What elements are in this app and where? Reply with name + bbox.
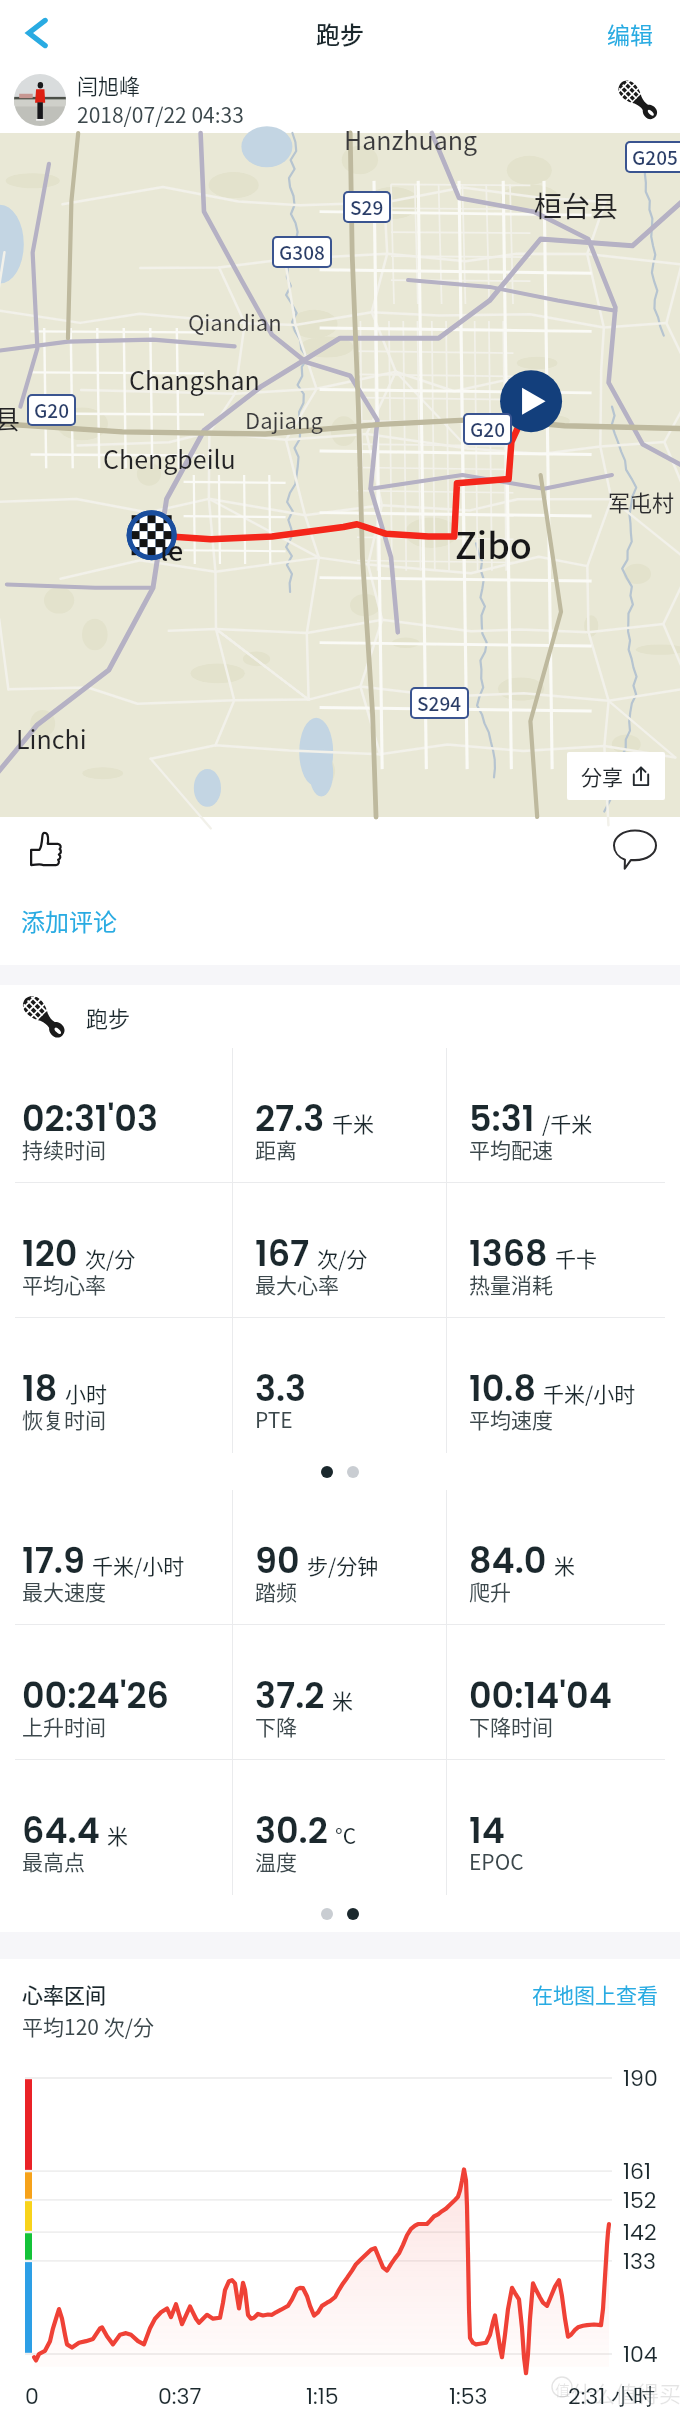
staticText: le (160, 530, 184, 569)
staticText: G20 (470, 415, 505, 443)
staticText: Linchi (16, 720, 87, 756)
staticText: 90 (255, 1536, 300, 1585)
staticText: 千米/小时 (92, 1550, 185, 1580)
staticText: 84.0 (469, 1536, 547, 1585)
staticText: 18 (22, 1364, 58, 1413)
staticText: S29 (350, 193, 384, 221)
staticText: 军屯村 (608, 485, 675, 517)
staticText: 编辑 (607, 17, 653, 50)
staticText: Zibo (455, 517, 533, 569)
staticText: 值 (555, 2379, 571, 2401)
staticText: 次/分 (85, 1243, 136, 1273)
staticText: 152 (623, 2185, 657, 2216)
staticText: PTE (255, 1404, 293, 1434)
staticText: 2018/07/22 04:33 (77, 99, 244, 129)
button[interactable]: Comment (610, 824, 660, 874)
staticText: /千米 (542, 1108, 593, 1138)
staticText: 02:31'03 (22, 1094, 158, 1143)
staticText: 闫旭峰 (77, 70, 140, 100)
staticText: 64.4 (22, 1806, 100, 1855)
staticText: 千米/小时 (543, 1378, 636, 1408)
staticText: S294 (417, 689, 462, 717)
staticText: 133 (623, 2246, 656, 2277)
staticText: 添加评论 (21, 903, 117, 938)
staticText: 桓台县 (534, 185, 619, 226)
staticText: 分享 (581, 761, 623, 791)
staticText: 120 (22, 1229, 78, 1278)
staticText: 平均心率 (22, 1269, 106, 1299)
staticText: Dajiang (245, 403, 323, 435)
staticText: Chengbeilu (103, 440, 236, 476)
staticText: EPOC (469, 1846, 524, 1876)
staticText: Changshan (129, 361, 260, 397)
staticText: 心率区间 (22, 1979, 106, 2009)
button[interactable]: Back (0, 0, 74, 66)
staticText: 10.8 (469, 1364, 536, 1413)
staticText: 1:15 (306, 2381, 339, 2412)
staticText: 在地图上查看 (532, 1979, 658, 2009)
staticText: 0 (25, 2381, 39, 2412)
staticText: 下降 (255, 1711, 297, 1741)
staticText: 2:31 小时 (568, 2381, 656, 2412)
staticText: G205 (632, 143, 678, 171)
staticText: 190 (623, 2063, 658, 2094)
staticText: 5:31 (469, 1094, 535, 1143)
staticText: Hanzhuang (344, 121, 478, 157)
staticText: 县 (0, 399, 21, 437)
staticText: 跑步 (316, 16, 364, 51)
staticText: 什么值得买 (571, 2376, 680, 2408)
staticText: 1368 (469, 1229, 548, 1278)
staticText: 167 (255, 1229, 310, 1278)
staticText: 1:53 (449, 2381, 488, 2412)
staticText: 37.2 (255, 1671, 325, 1720)
button[interactable]: 分享 (567, 752, 665, 800)
staticText: 持续时间 (22, 1134, 106, 1164)
button[interactable]: 在地图上查看 (532, 1979, 658, 2009)
staticText: 千米 (332, 1108, 374, 1138)
button[interactable]: 编辑 (607, 0, 680, 66)
staticText: 27.3 (255, 1094, 325, 1143)
staticText: 米 (554, 1550, 575, 1580)
staticText: 爬升 (469, 1576, 511, 1606)
staticText: 次/分 (317, 1243, 368, 1273)
staticText: 距离 (255, 1134, 297, 1164)
staticText: 跑步 (86, 1001, 131, 1033)
staticText: Qiandian (188, 305, 282, 337)
button[interactable]: Running sport (610, 72, 666, 128)
staticText: 最大心率 (255, 1269, 339, 1299)
staticText: 00:14'04 (469, 1671, 612, 1720)
staticText: 142 (623, 2217, 657, 2248)
staticText: 3.3 (255, 1364, 307, 1413)
staticText: 米 (332, 1685, 353, 1715)
staticText: 小时 (65, 1378, 107, 1408)
staticText: 上升时间 (22, 1711, 106, 1741)
staticText: G20 (34, 396, 69, 424)
staticText: 恢复时间 (22, 1404, 106, 1434)
staticText: 0:37 (158, 2381, 202, 2412)
button[interactable]: 添加评论 (0, 881, 680, 965)
staticText: 最高点 (22, 1846, 85, 1876)
staticText: 104 (623, 2339, 658, 2370)
button[interactable]: Like (20, 824, 70, 874)
staticText: 30.2 (255, 1806, 328, 1855)
staticText: 平均120 次/分 (22, 2011, 154, 2041)
staticText: 平均配速 (469, 1134, 553, 1164)
staticText: 踏频 (255, 1576, 297, 1606)
staticText: 14 (469, 1806, 505, 1855)
staticText: 步/分钟 (307, 1550, 379, 1580)
staticText: 161 (623, 2156, 652, 2187)
staticText: 平均速度 (469, 1404, 553, 1434)
staticText: 热量消耗 (469, 1269, 553, 1299)
staticText: G308 (279, 238, 325, 266)
staticText: 千卡 (555, 1243, 597, 1273)
staticText: 00:24'26 (22, 1671, 169, 1720)
staticText: °C (335, 1820, 357, 1850)
staticText: 下降时间 (469, 1711, 553, 1741)
staticText: 最大速度 (22, 1576, 106, 1606)
staticText: 温度 (255, 1846, 297, 1876)
staticText: 17.9 (22, 1536, 85, 1585)
staticText: 米 (107, 1820, 128, 1850)
